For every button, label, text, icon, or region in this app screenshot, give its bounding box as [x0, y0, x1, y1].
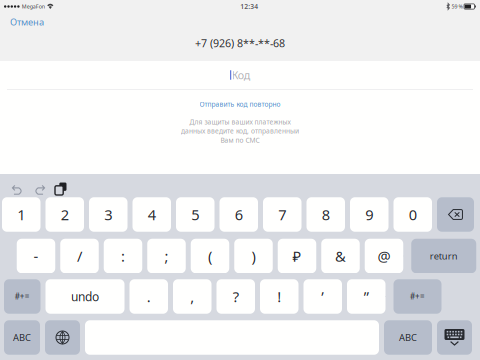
- staticText: #+=: [15, 291, 30, 302]
- button[interactable]: Next keyboard: [45, 320, 80, 355]
- staticText: 3: [104, 205, 112, 224]
- staticText: 7: [278, 205, 286, 224]
- button[interactable]: 3: [89, 197, 127, 232]
- staticText: Вам по СМС: [220, 136, 259, 145]
- button[interactable]: -: [17, 239, 55, 273]
- staticText: /: [77, 246, 82, 266]
- staticText: Код: [232, 68, 250, 82]
- button[interactable]: 5: [176, 197, 214, 232]
- staticText: 5: [191, 205, 199, 224]
- button[interactable]: Код: [0, 61, 480, 89]
- button[interactable]: #+=: [393, 279, 441, 314]
- button[interactable]: :: [104, 239, 142, 273]
- staticText: ,: [190, 287, 194, 306]
- button[interactable]: ,: [173, 279, 211, 314]
- button[interactable]: 8: [306, 197, 345, 232]
- button[interactable]: 2: [45, 197, 84, 232]
- button[interactable]: undo: [45, 279, 124, 314]
- staticText: &: [335, 246, 346, 266]
- button[interactable]: 1: [2, 197, 40, 232]
- staticText: ;: [164, 246, 168, 266]
- staticText: -: [33, 246, 38, 266]
- staticText: +7 (926) 8**-**-68: [195, 36, 285, 50]
- button[interactable]: ): [234, 239, 273, 273]
- staticText: 8: [322, 205, 330, 224]
- staticText: ’: [321, 287, 324, 306]
- button[interactable]: [85, 320, 379, 355]
- button[interactable]: Hide keyboard: [437, 320, 472, 355]
- staticText: undo: [71, 288, 99, 304]
- button[interactable]: ABC: [4, 320, 40, 355]
- staticText: #+=: [410, 291, 425, 302]
- staticText: 6: [235, 205, 243, 224]
- button[interactable]: /: [60, 239, 99, 273]
- button[interactable]: #+=: [4, 279, 40, 314]
- staticText: return: [430, 250, 458, 262]
- button[interactable]: ;: [147, 239, 186, 273]
- staticText: 2: [61, 205, 69, 224]
- staticText: 9: [365, 205, 373, 224]
- staticText: ₽: [292, 246, 301, 266]
- staticText: 12:34: [240, 2, 258, 11]
- staticText: @: [377, 246, 390, 266]
- staticText: !: [277, 287, 281, 306]
- button[interactable]: 0: [393, 197, 432, 232]
- button[interactable]: 4: [132, 197, 171, 232]
- staticText: ABC: [13, 331, 31, 344]
- button[interactable]: Отмена: [0, 11, 54, 33]
- button[interactable]: Delete: [437, 197, 474, 232]
- staticText: Для защиты ваших платежных: [189, 118, 290, 126]
- button[interactable]: 7: [263, 197, 301, 232]
- staticText: .: [147, 287, 151, 306]
- staticText: ?: [233, 287, 239, 306]
- button[interactable]: ”: [347, 279, 385, 314]
- staticText: 4: [148, 205, 156, 224]
- staticText: Отправить код повторно: [199, 100, 280, 109]
- button[interactable]: 6: [219, 197, 258, 232]
- staticText: данных введите код, отправленный: [181, 127, 299, 135]
- button[interactable]: &: [321, 239, 360, 273]
- button[interactable]: ?: [216, 279, 255, 314]
- button[interactable]: @: [365, 239, 403, 273]
- staticText: ”: [364, 287, 369, 306]
- staticText: MegaFon: [22, 3, 45, 10]
- staticText: 0: [409, 205, 417, 224]
- button[interactable]: ’: [303, 279, 342, 314]
- button[interactable]: ABC: [384, 320, 432, 355]
- button[interactable]: !: [260, 279, 298, 314]
- button[interactable]: ₽: [278, 239, 316, 273]
- button[interactable]: Paste: [50, 173, 71, 195]
- staticText: ABC: [399, 331, 417, 344]
- button[interactable]: .: [129, 279, 168, 314]
- button[interactable]: (: [191, 239, 229, 273]
- staticText: :: [121, 246, 125, 266]
- staticText: ): [251, 246, 255, 266]
- button[interactable]: Отправить код повторно: [187, 90, 292, 115]
- button[interactable]: 9: [350, 197, 388, 232]
- button[interactable]: Undo: [7, 173, 28, 195]
- staticText: (: [208, 246, 212, 266]
- staticText: 59 %: [452, 3, 463, 10]
- staticText: Отмена: [10, 16, 44, 28]
- button[interactable]: return: [411, 239, 476, 273]
- staticText: 1: [17, 205, 25, 224]
- button[interactable]: Redo: [28, 173, 50, 195]
